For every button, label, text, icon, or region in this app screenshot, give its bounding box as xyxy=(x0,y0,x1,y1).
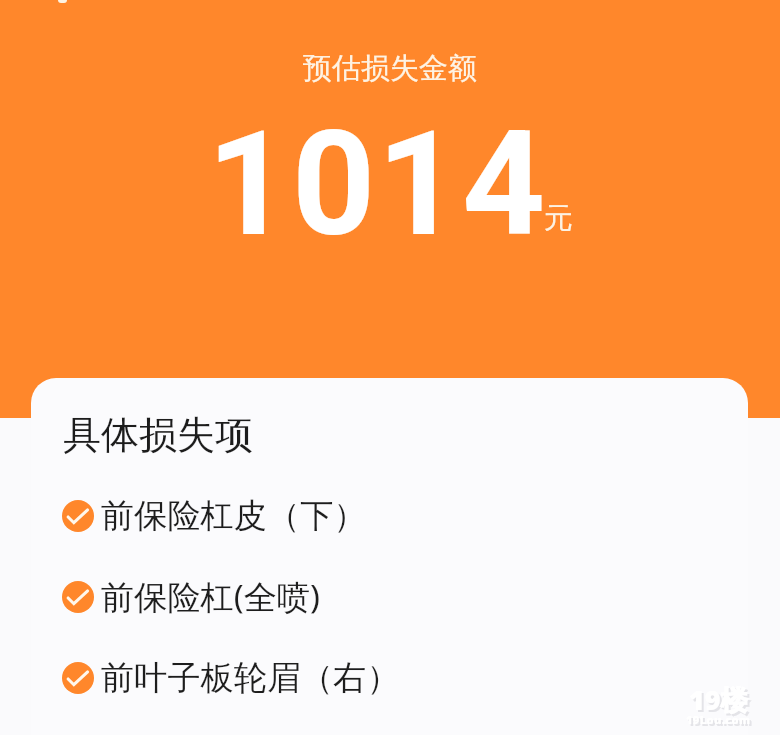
button[interactable]: Included xyxy=(31,637,748,718)
staticText: 1014 xyxy=(207,99,547,269)
staticText: 具体损失项 xyxy=(63,411,253,459)
other: Included xyxy=(62,581,94,613)
staticText: 19Lou.com xyxy=(686,712,751,727)
other: Included xyxy=(62,500,94,532)
staticText: 前保险杠皮（下） xyxy=(101,495,367,537)
other: Included xyxy=(62,662,94,694)
staticText: 元 xyxy=(544,200,573,237)
staticText: 前叶子板轮眉（右） xyxy=(101,657,400,699)
staticText: 前保险杠(全喷) xyxy=(101,574,321,619)
staticText: 19楼 xyxy=(691,683,750,720)
button[interactable]: Included xyxy=(31,475,748,556)
button[interactable]: Included xyxy=(31,556,748,637)
staticText: 19Lou.com xyxy=(688,714,753,729)
staticText: 预估损失金额 xyxy=(303,50,477,87)
staticText: 19楼 xyxy=(689,681,748,718)
